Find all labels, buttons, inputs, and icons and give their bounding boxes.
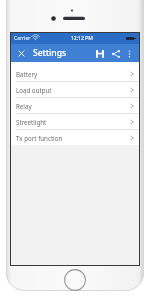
staticText: 12:12 PM [71,35,93,42]
staticText: Battery [16,70,130,78]
staticText: Relay [16,102,130,110]
staticText: Settings [33,47,67,59]
button[interactable]: Load output [11,82,139,97]
button[interactable]: Streetlight [11,114,139,129]
button[interactable]: Tx port function [11,130,139,145]
button[interactable]: Battery [11,66,139,81]
staticText: Tx port function [16,134,130,142]
staticText: Carrier [14,35,31,42]
button[interactable]: Relay [11,98,139,113]
button[interactable]: Close [15,47,27,59]
staticText: Load output [16,86,130,94]
button[interactable]: Save [93,47,106,60]
button[interactable]: Share [109,47,122,60]
button[interactable]: More options [124,48,135,59]
staticText: Streetlight [16,118,130,126]
